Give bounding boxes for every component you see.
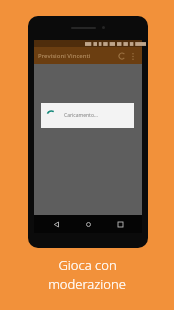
button[interactable]: Recent apps bbox=[110, 215, 130, 233]
button[interactable]: Back bbox=[46, 215, 66, 233]
staticText: Gioca con bbox=[58, 256, 117, 274]
button[interactable]: Caricamento... bbox=[41, 103, 134, 128]
button[interactable]: More options bbox=[128, 51, 138, 61]
staticText: Caricamento... bbox=[64, 112, 98, 119]
staticText: Previsioni Vincenti bbox=[38, 52, 116, 60]
staticText: moderazione bbox=[48, 275, 126, 293]
button[interactable]: Home bbox=[78, 215, 98, 233]
button[interactable]: Refresh bbox=[116, 50, 128, 62]
